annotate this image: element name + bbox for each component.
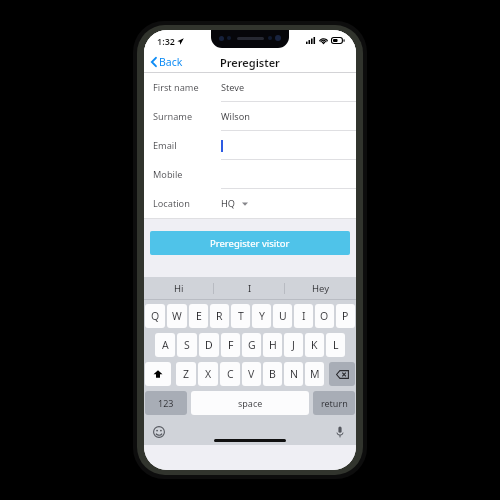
- staticText: H: [269, 338, 277, 352]
- button[interactable]: Backspace: [329, 362, 355, 386]
- staticText: V: [248, 367, 255, 381]
- button[interactable]: H: [263, 333, 282, 357]
- staticText: Location: [153, 197, 190, 210]
- staticText: O: [320, 309, 329, 323]
- button[interactable]: Emoji keyboard: [151, 424, 167, 440]
- staticText: Back: [159, 55, 183, 69]
- staticText: F: [228, 338, 234, 352]
- staticText: T: [238, 309, 244, 323]
- staticText: W: [172, 309, 182, 323]
- button[interactable]: space: [191, 391, 309, 415]
- staticText: I: [302, 309, 306, 323]
- button[interactable]: V: [242, 362, 261, 386]
- staticText: Email: [153, 139, 177, 152]
- staticText: Hey: [312, 282, 330, 295]
- button[interactable]: Z: [176, 362, 196, 386]
- staticText: Z: [183, 367, 190, 381]
- button[interactable]: B: [263, 362, 282, 386]
- button[interactable]: X: [198, 362, 218, 386]
- staticText: space: [238, 397, 263, 409]
- staticText: U: [279, 309, 287, 323]
- staticText: A: [162, 338, 169, 352]
- button[interactable]: Y: [252, 304, 271, 328]
- staticText: First name: [153, 81, 199, 94]
- button[interactable]: I: [294, 304, 313, 328]
- button[interactable]: Email: [144, 131, 356, 160]
- staticText: B: [269, 367, 276, 381]
- button[interactable]: Mobile: [144, 160, 356, 189]
- button[interactable]: First name: [144, 73, 356, 102]
- button[interactable]: K: [305, 333, 324, 357]
- button[interactable]: Dictation: [332, 424, 348, 440]
- button[interactable]: S: [177, 333, 197, 357]
- button[interactable]: J: [284, 333, 303, 357]
- staticText: J: [292, 338, 295, 352]
- staticText: Y: [259, 309, 265, 323]
- staticText: Preregister visitor: [210, 237, 290, 250]
- button[interactable]: Q: [145, 304, 165, 328]
- staticText: Mobile: [153, 168, 183, 181]
- button[interactable]: P: [336, 304, 355, 328]
- button[interactable]: M: [305, 362, 324, 386]
- staticText: Steve: [221, 81, 245, 94]
- button[interactable]: Back: [144, 55, 192, 69]
- button[interactable]: I: [214, 277, 285, 300]
- button[interactable]: A: [155, 333, 175, 357]
- button[interactable]: Preregister visitor: [150, 231, 350, 255]
- button[interactable]: U: [273, 304, 292, 328]
- button[interactable]: W: [167, 304, 187, 328]
- button[interactable]: 123: [145, 391, 187, 415]
- staticText: P: [342, 309, 349, 323]
- staticText: 1:32: [157, 35, 175, 47]
- staticText: N: [290, 367, 298, 381]
- staticText: Q: [151, 309, 160, 323]
- staticText: return: [321, 397, 348, 409]
- staticText: Surname: [153, 110, 193, 123]
- staticText: S: [184, 338, 190, 352]
- staticText: 123: [158, 397, 174, 409]
- button[interactable]: O: [315, 304, 334, 328]
- button[interactable]: Hi: [144, 277, 214, 300]
- staticText: Wilson: [221, 110, 250, 123]
- button[interactable]: N: [284, 362, 303, 386]
- staticText: M: [310, 367, 320, 381]
- staticText: D: [205, 338, 213, 352]
- button[interactable]: C: [220, 362, 240, 386]
- staticText: E: [196, 309, 202, 323]
- staticText: Hi: [174, 282, 184, 295]
- button[interactable]: R: [210, 304, 229, 328]
- staticText: I: [248, 282, 252, 295]
- button[interactable]: D: [199, 333, 219, 357]
- button[interactable]: E: [189, 304, 208, 328]
- staticText: C: [227, 367, 234, 381]
- button[interactable]: L: [326, 333, 345, 357]
- button[interactable]: return: [313, 391, 355, 415]
- staticText: HQ: [221, 197, 235, 210]
- staticText: R: [216, 309, 223, 323]
- button[interactable]: Location: [144, 189, 356, 218]
- button[interactable]: F: [221, 333, 240, 357]
- button[interactable]: G: [242, 333, 261, 357]
- button[interactable]: Hey: [285, 277, 356, 300]
- staticText: K: [311, 338, 318, 352]
- button[interactable]: T: [231, 304, 250, 328]
- button[interactable]: Surname: [144, 102, 356, 131]
- staticText: L: [333, 338, 339, 352]
- staticText: G: [248, 338, 256, 352]
- staticText: X: [205, 367, 212, 381]
- staticText: Preregister: [220, 55, 280, 70]
- button[interactable]: Shift: [145, 362, 171, 386]
